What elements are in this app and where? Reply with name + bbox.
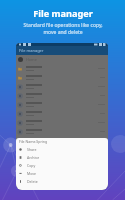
- staticText: Home: [26, 57, 37, 62]
- staticText: Standard file operations like copy, move…: [23, 22, 103, 36]
- staticText: Archive: [27, 155, 40, 160]
- staticText: Move: [27, 171, 36, 176]
- staticText: Delete: [27, 179, 38, 184]
- button[interactable]: Move: [16, 169, 108, 177]
- staticText: File Name.Spring: [19, 139, 48, 144]
- button[interactable]: [16, 100, 108, 109]
- button[interactable]: Home: [16, 55, 108, 64]
- button[interactable]: Delete: [16, 177, 108, 185]
- button[interactable]: [16, 118, 108, 127]
- button[interactable]: [16, 127, 108, 136]
- staticText: File manager: [33, 7, 93, 20]
- button[interactable]: Copy: [16, 161, 108, 169]
- button[interactable]: [16, 91, 108, 100]
- button[interactable]: [16, 109, 108, 118]
- button[interactable]: Archive: [16, 153, 108, 161]
- staticText: Share: [27, 147, 37, 152]
- button[interactable]: [16, 82, 108, 91]
- button[interactable]: [16, 73, 108, 82]
- button[interactable]: Share: [16, 145, 108, 153]
- staticText: Copy: [27, 163, 36, 168]
- staticText: File manager: [19, 48, 44, 53]
- button[interactable]: [16, 64, 108, 73]
